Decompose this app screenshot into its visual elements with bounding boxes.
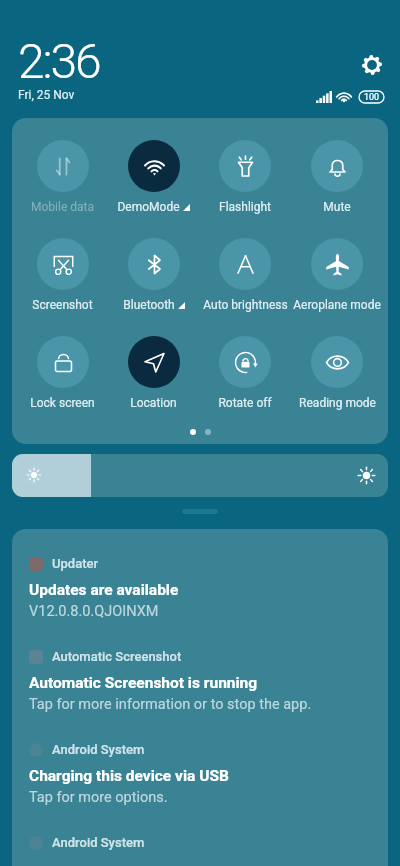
button[interactable]: Android System (12, 826, 388, 866)
staticText: Aeroplane mode (293, 298, 381, 312)
staticText: Tap for more options. (29, 789, 168, 806)
staticText: DemoMode (117, 200, 180, 214)
button[interactable]: Location (108, 336, 199, 410)
button[interactable]: DemoMode (108, 140, 199, 214)
staticText: Automatic Screenshot is running (29, 674, 258, 692)
button[interactable]: Reading mode (291, 336, 383, 410)
staticText: Tap for more information or to stop the … (29, 696, 312, 713)
button[interactable]: Brightness (12, 454, 388, 497)
button[interactable]: Lock screen (17, 336, 108, 410)
button[interactable]: Automatic Screenshot (12, 640, 388, 725)
staticText: Rotate off (218, 396, 272, 410)
button[interactable]: Rotate off (199, 336, 291, 410)
button[interactable]: Mobile data (17, 140, 108, 214)
staticText: Flashlight (219, 200, 271, 214)
button[interactable]: Updater (12, 547, 388, 632)
button[interactable]: Auto brightness (199, 238, 291, 312)
staticText: Screenshot (32, 298, 93, 312)
staticText: Fri, 25 Nov (18, 88, 75, 102)
button[interactable]: Android System (12, 733, 388, 818)
staticText: V12.0.8.0.QJOINXM (29, 603, 159, 620)
staticText: Mobile data (31, 200, 94, 214)
button[interactable]: Mute (291, 140, 383, 214)
staticText: Location (130, 396, 177, 410)
staticText: Updater (52, 556, 99, 571)
button[interactable]: Bluetooth (108, 238, 199, 312)
staticText: Lock screen (30, 396, 95, 410)
button[interactable]: Aeroplane mode (291, 238, 383, 312)
staticText: Automatic Screenshot (52, 649, 182, 664)
staticText: 100 (364, 92, 380, 103)
staticText: Auto brightness (203, 298, 288, 312)
staticText: Bluetooth (123, 298, 175, 312)
staticText: Reading mode (299, 396, 376, 410)
staticText: Mute (323, 200, 351, 214)
button[interactable]: Flashlight (199, 140, 291, 214)
staticText: 2:36 (18, 33, 100, 89)
button[interactable]: Settings (356, 49, 388, 81)
staticText: Charging this device via USB (29, 767, 229, 785)
staticText: Updates are available (29, 581, 179, 599)
staticText: Android System (52, 742, 145, 757)
button[interactable]: Screenshot (17, 238, 108, 312)
staticText: Android System (52, 835, 145, 850)
